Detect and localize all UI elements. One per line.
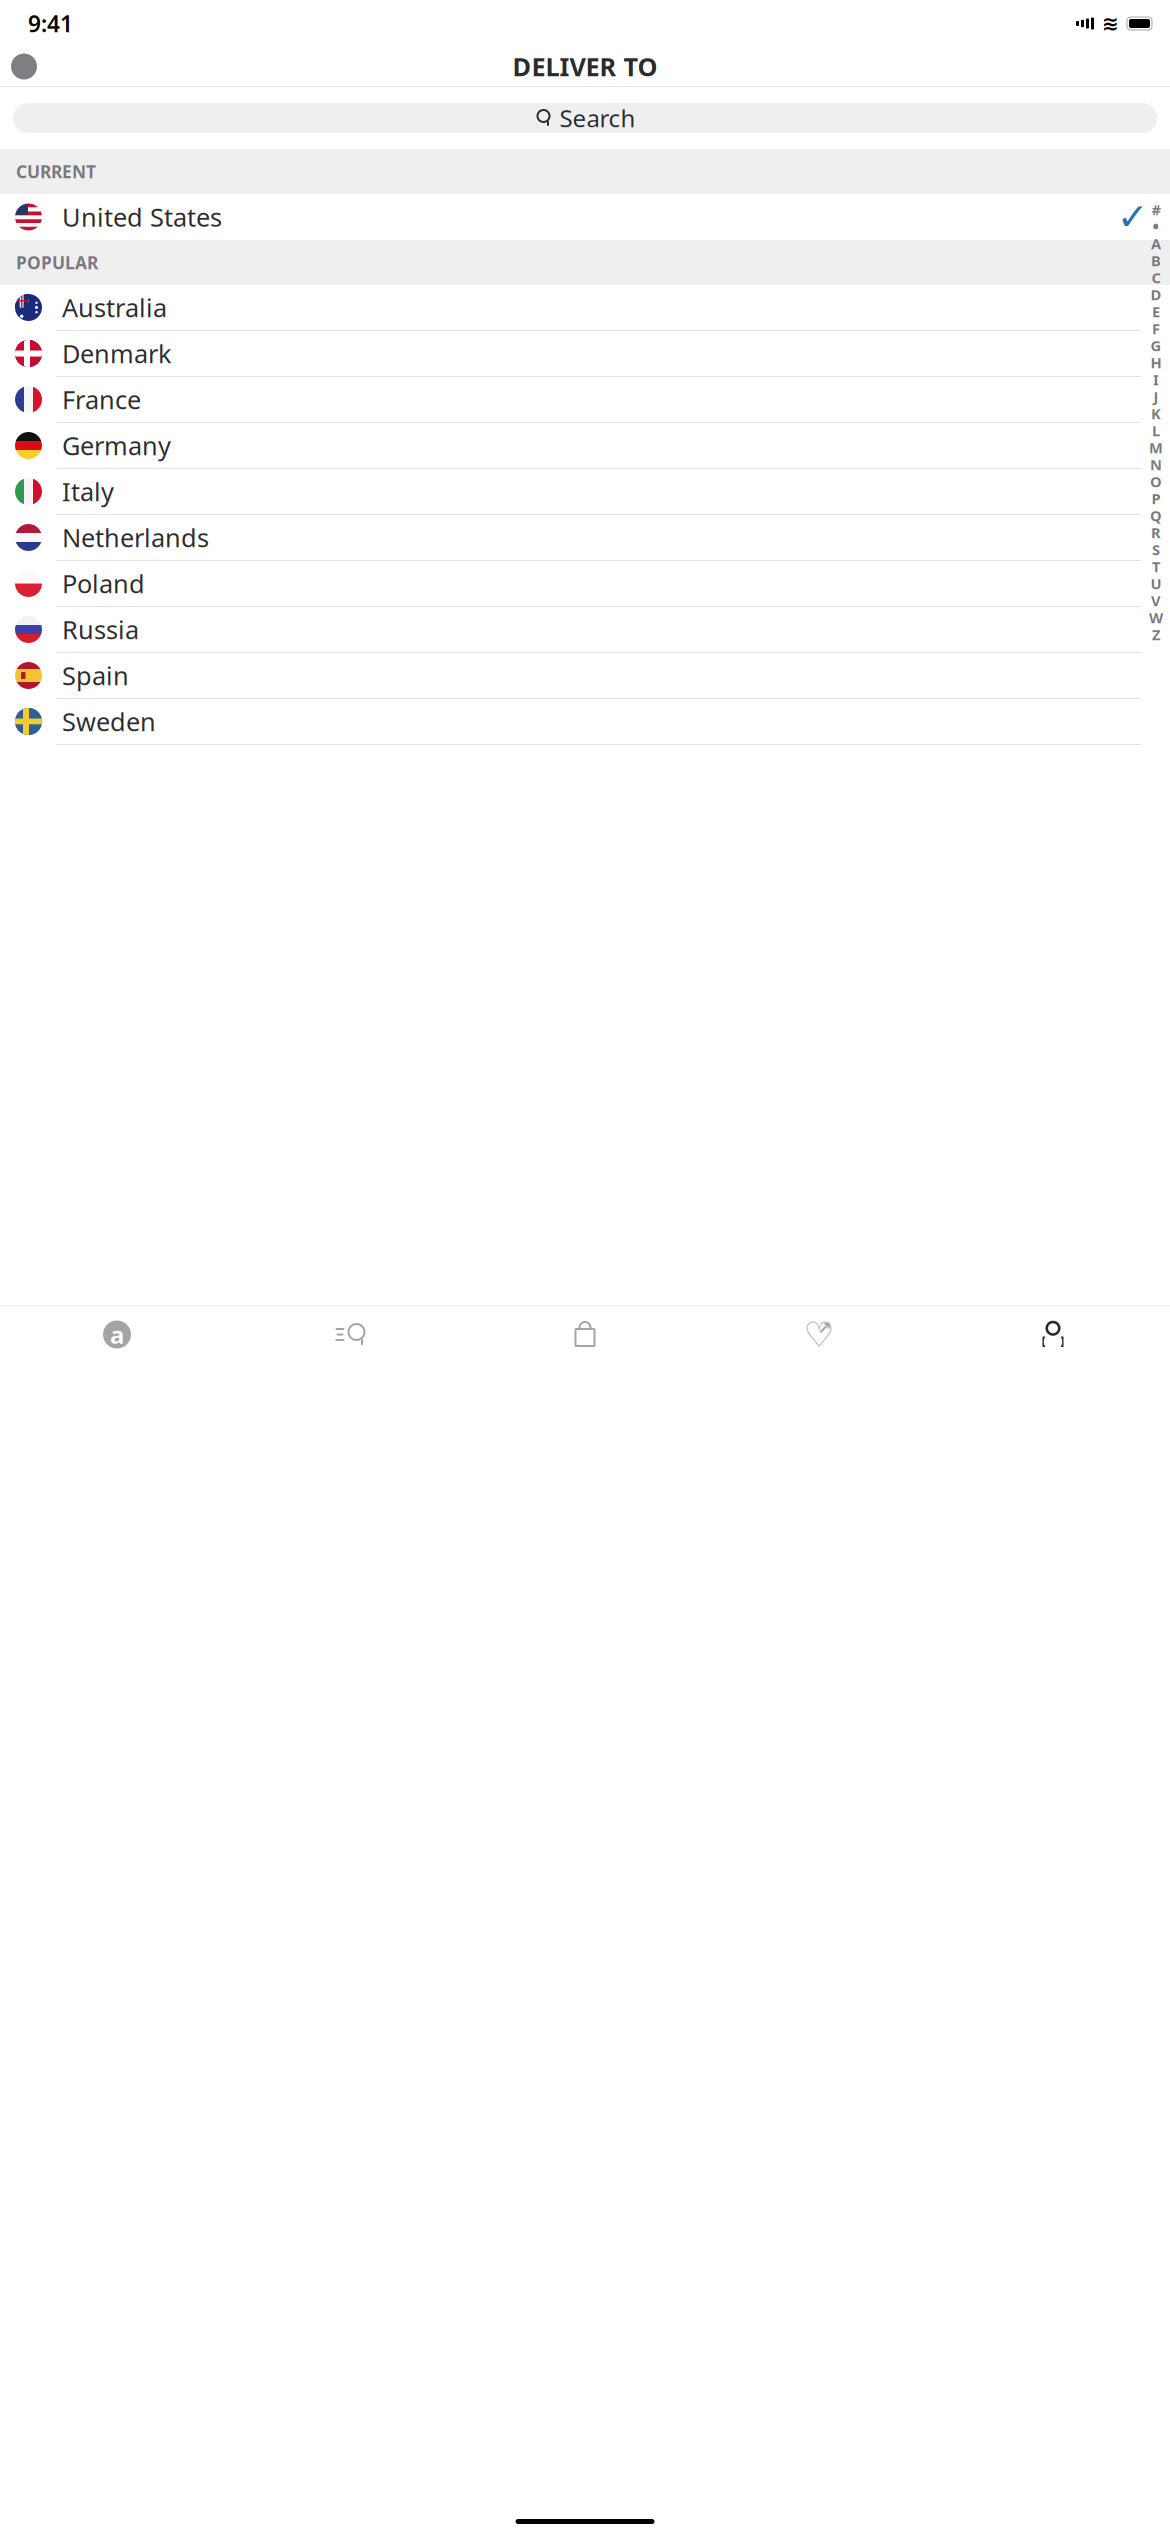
button[interactable]: Germany xyxy=(0,423,1170,469)
staticText: G xyxy=(1150,336,1161,355)
button[interactable]: P xyxy=(1145,490,1167,507)
staticText: Sweden xyxy=(62,705,156,738)
staticText: ♡ xyxy=(803,1315,834,1354)
button[interactable]: # xyxy=(1145,201,1167,218)
button[interactable]: H xyxy=(1145,354,1167,371)
staticText: V xyxy=(1151,591,1161,610)
staticText: POPULAR xyxy=(16,251,98,274)
button[interactable]: A xyxy=(1145,235,1167,252)
staticText: I xyxy=(1153,370,1159,389)
button[interactable]: Back xyxy=(0,44,48,88)
button[interactable]: Bag xyxy=(468,1322,702,1347)
button[interactable]: S xyxy=(1145,541,1167,558)
staticText: Netherlands xyxy=(62,521,209,554)
staticText: Germany xyxy=(62,429,171,462)
staticText: CURRENT xyxy=(16,160,96,183)
button[interactable]: I xyxy=(1145,371,1167,388)
staticText: • xyxy=(1152,215,1159,238)
button[interactable]: Poland xyxy=(0,561,1170,607)
staticText: M xyxy=(1149,438,1163,457)
staticText: R xyxy=(1151,523,1161,542)
staticText: Australia xyxy=(62,291,167,324)
staticText: H xyxy=(1150,353,1161,372)
staticText: Italy xyxy=(62,475,114,508)
button[interactable]: Account xyxy=(936,1321,1170,1348)
button[interactable]: C xyxy=(1145,269,1167,286)
button[interactable]: Australia xyxy=(0,285,1170,331)
button[interactable]: Q xyxy=(1145,507,1167,524)
button[interactable]: M xyxy=(1145,439,1167,456)
staticText: Z xyxy=(1152,625,1160,644)
staticText: ↗ xyxy=(817,1318,832,1338)
button[interactable]: J xyxy=(1145,388,1167,405)
staticText: D xyxy=(1150,285,1161,304)
button[interactable]: Home xyxy=(0,1320,234,1348)
button[interactable]: Search xyxy=(234,1322,468,1346)
staticText: # xyxy=(1151,200,1160,219)
staticText: B xyxy=(1151,251,1161,270)
staticText: L xyxy=(1152,421,1160,440)
staticText: United States xyxy=(62,200,222,234)
button[interactable]: F xyxy=(1145,320,1167,337)
staticText: N xyxy=(1150,455,1162,474)
button[interactable]: Russia xyxy=(0,607,1170,653)
staticText: ◀ xyxy=(11,57,23,76)
staticText: O xyxy=(1150,472,1162,491)
staticText: C xyxy=(1151,268,1160,287)
button[interactable]: N xyxy=(1145,456,1167,473)
button[interactable]: O xyxy=(1145,473,1167,490)
button[interactable]: T xyxy=(1145,558,1167,575)
button[interactable]: Italy xyxy=(0,469,1170,515)
button[interactable]: Netherlands xyxy=(0,515,1170,561)
staticText: F xyxy=(1152,319,1160,338)
staticText: Poland xyxy=(62,567,145,600)
button[interactable]: G xyxy=(1145,337,1167,354)
staticText: Denmark xyxy=(62,337,172,370)
staticText: 9:41 xyxy=(28,8,73,38)
button[interactable]: D xyxy=(1145,286,1167,303)
staticText: P xyxy=(1151,489,1160,508)
staticText: ≋ xyxy=(1102,12,1119,35)
staticText: ✓ xyxy=(1117,196,1148,238)
staticText: Q xyxy=(1150,506,1162,525)
staticText: J xyxy=(1153,387,1158,406)
staticText: France xyxy=(62,383,141,416)
button[interactable]: V xyxy=(1145,592,1167,609)
staticText: Russia xyxy=(62,613,139,646)
button[interactable]: • xyxy=(1145,218,1167,235)
button[interactable]: Sweden xyxy=(0,699,1170,745)
staticText: S xyxy=(1152,540,1160,559)
button[interactable]: United States xyxy=(0,194,1170,240)
staticText: A xyxy=(1151,234,1161,253)
staticText: W xyxy=(1149,608,1163,627)
button[interactable]: France xyxy=(0,377,1170,423)
staticText: U xyxy=(1150,574,1161,593)
button[interactable]: Search xyxy=(13,103,1157,133)
button[interactable]: Denmark xyxy=(0,331,1170,377)
button[interactable]: B xyxy=(1145,252,1167,269)
staticText: K xyxy=(1151,404,1161,423)
button[interactable]: K xyxy=(1145,405,1167,422)
staticText: a xyxy=(110,1319,124,1350)
button[interactable]: Spain xyxy=(0,653,1170,699)
staticText: Search xyxy=(559,102,635,134)
button[interactable]: L xyxy=(1145,422,1167,439)
button[interactable]: R xyxy=(1145,524,1167,541)
button[interactable]: Favourites xyxy=(702,1321,936,1347)
button[interactable]: W xyxy=(1145,609,1167,626)
staticText: DELIVER TO xyxy=(512,50,657,83)
button[interactable]: Z xyxy=(1145,626,1167,643)
staticText: Spain xyxy=(62,659,129,692)
staticText: T xyxy=(1152,557,1160,576)
button[interactable]: U xyxy=(1145,575,1167,592)
button[interactable]: E xyxy=(1145,303,1167,320)
staticText: E xyxy=(1152,302,1160,321)
